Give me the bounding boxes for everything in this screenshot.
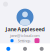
staticText: Jane Appleseed bbox=[5, 26, 44, 33]
button[interactable]: Tab bbox=[0, 43, 17, 54]
button[interactable]: Tab bbox=[17, 43, 33, 54]
staticText: jane@icloud.com bbox=[10, 33, 40, 38]
button[interactable]: Tab bbox=[33, 43, 50, 54]
staticText: Settings bbox=[17, 38, 30, 43]
button[interactable]: Back bbox=[3, 2, 8, 7]
